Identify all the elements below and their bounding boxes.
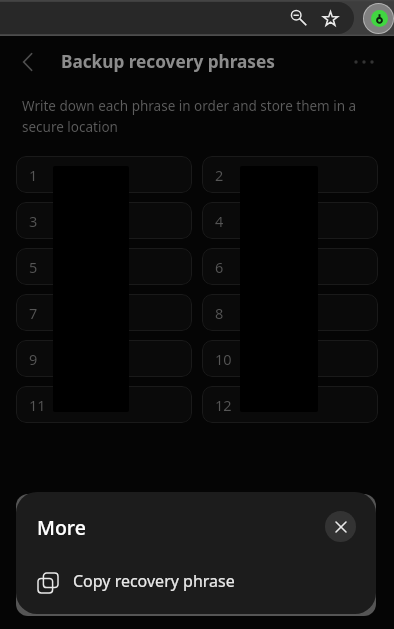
button[interactable]: Copy recovery phrase [16, 558, 376, 604]
staticText: 11 [29, 395, 46, 415]
button[interactable]: 6 [202, 248, 378, 285]
staticText: 4 [215, 211, 224, 231]
staticText: 9 [29, 349, 38, 369]
button[interactable]: 2 [202, 156, 378, 193]
button[interactable]: Zoom out [286, 5, 310, 29]
button[interactable]: 12 [202, 386, 378, 423]
staticText: More [37, 514, 86, 541]
staticText: Write down each phrase in order and stor… [22, 97, 360, 136]
staticText: 10 [215, 349, 232, 369]
button[interactable]: 4 [202, 202, 378, 239]
staticText: 1 [29, 165, 38, 185]
staticText: Backup recovery phrases [61, 50, 275, 73]
button[interactable]: Bookmark [318, 6, 342, 30]
button[interactable]: 10 [202, 340, 378, 377]
staticText: 2 [215, 165, 224, 185]
staticText: Copy recovery phrase [73, 570, 235, 592]
button[interactable]: More options [349, 47, 379, 77]
staticText: 5 [29, 257, 38, 277]
button[interactable]: 1 [16, 156, 192, 193]
button[interactable]: Back [14, 48, 42, 76]
staticText: 7 [29, 303, 38, 323]
staticText: 8 [215, 303, 224, 323]
button[interactable]: 8 [202, 294, 378, 331]
button[interactable]: 5 [16, 248, 192, 285]
button[interactable]: Close [325, 511, 356, 542]
staticText: 3 [29, 211, 38, 231]
staticText: 6 [215, 257, 224, 277]
button[interactable]: 9 [16, 340, 192, 377]
button[interactable]: 11 [16, 386, 192, 423]
button[interactable]: 3 [16, 202, 192, 239]
button[interactable]: Account [363, 3, 394, 34]
button[interactable]: 7 [16, 294, 192, 331]
staticText: 12 [215, 395, 232, 415]
